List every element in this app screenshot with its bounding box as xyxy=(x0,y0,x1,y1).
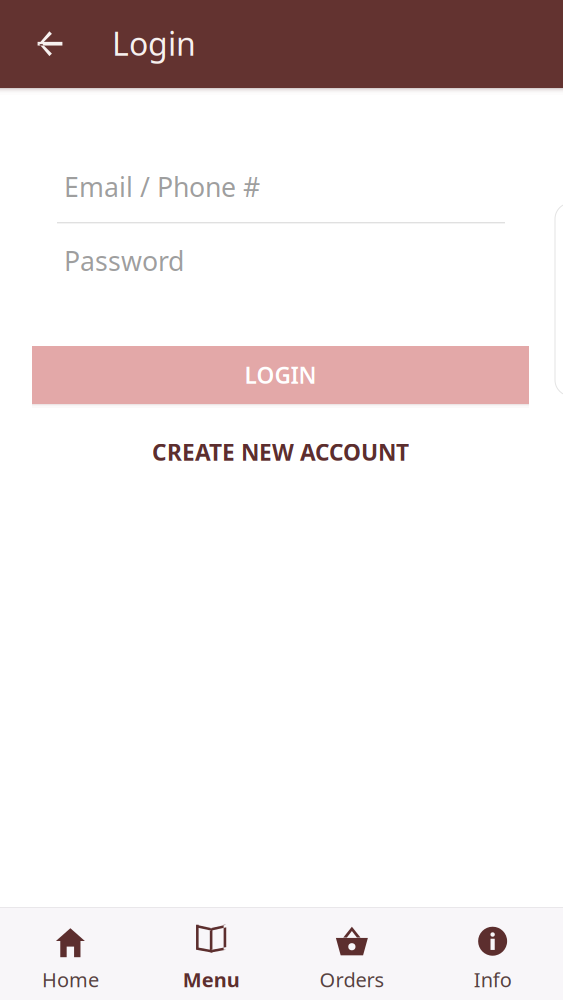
staticText: Menu xyxy=(183,966,240,993)
staticText: Home xyxy=(42,966,99,993)
button[interactable]: Back xyxy=(24,18,76,70)
button[interactable]: Password xyxy=(57,229,505,283)
staticText: Orders xyxy=(319,966,384,993)
button[interactable]: CREATE NEW ACCOUNT xyxy=(32,432,529,472)
button[interactable]: Email / Phone # xyxy=(57,155,505,209)
button[interactable]: Menu xyxy=(141,907,282,1000)
staticText: Info xyxy=(474,966,512,993)
staticText: Email / Phone # xyxy=(64,169,260,204)
staticText: CREATE NEW ACCOUNT xyxy=(152,437,409,467)
button[interactable]: Orders xyxy=(281,907,422,1000)
staticText: Password xyxy=(64,243,184,278)
staticText: LOGIN xyxy=(244,360,316,390)
button[interactable]: LOGIN xyxy=(32,346,529,404)
staticText: Login xyxy=(112,22,196,64)
button[interactable]: Info xyxy=(422,907,563,1000)
button[interactable]: Home xyxy=(0,907,141,1000)
